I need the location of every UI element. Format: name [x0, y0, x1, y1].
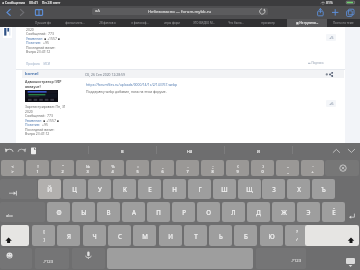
button[interactable]: .: [176, 160, 199, 176]
button[interactable]: +5: [326, 34, 336, 41]
button[interactable]: Ж: [272, 202, 295, 222]
button[interactable]: %: [101, 160, 124, 176]
button[interactable]: ): [251, 160, 274, 176]
button[interactable]: ·: [301, 160, 324, 176]
button[interactable]: В: [97, 202, 120, 222]
button[interactable]: Sidebar: [32, 6, 46, 19]
button[interactable]: Лучшие фо: [27, 19, 59, 27]
button[interactable]: 28 фактов о: [91, 19, 123, 27]
button[interactable]: Щ: [238, 179, 261, 199]
button[interactable]: Д: [247, 202, 270, 222]
button[interactable]: на: [156, 144, 224, 157]
staticText: игры форм: [164, 21, 180, 25]
staticText: >: [11, 169, 14, 174]
button[interactable]: Л: [222, 202, 245, 222]
button[interactable]: .?123: [256, 248, 306, 269]
button[interactable]: К: [113, 179, 136, 199]
button[interactable]: ▣ Не грузится...: [287, 19, 327, 27]
button[interactable]: Р: [172, 202, 195, 222]
button[interactable]: Emoji: [0, 248, 32, 269]
button[interactable]: Посты по теме: [327, 19, 360, 27]
button[interactable]: И: [159, 225, 182, 246]
button[interactable]: Delete: [325, 160, 359, 176]
button[interactable]: .?123: [35, 248, 69, 269]
button[interactable]: Я: [57, 225, 80, 246]
staticText: Профиль ИСИ: [26, 62, 51, 66]
button[interactable]: –: [276, 160, 299, 176]
button[interactable]: к философ...: [124, 19, 156, 27]
button[interactable]: О: [197, 202, 220, 222]
button[interactable]: Й: [38, 179, 61, 199]
button[interactable]: Voice input: [72, 248, 105, 269]
staticText: :: [137, 164, 139, 169]
button[interactable]: Next: [345, 145, 358, 157]
staticText: к философ...: [131, 21, 149, 25]
button[interactable]: Ъ: [312, 179, 335, 199]
button[interactable]: Ч: [83, 225, 106, 246]
button[interactable]: [: [32, 225, 55, 246]
button[interactable]: Tab: [0, 179, 37, 199]
button[interactable]: :: [126, 160, 149, 176]
button[interactable]: ЭТО ВИДЕО М...: [188, 19, 220, 27]
button[interactable]: А: [122, 202, 145, 222]
button[interactable]: Ь: [209, 225, 232, 246]
button[interactable]: Ш: [213, 179, 236, 199]
button[interactable]: Undo: [3, 145, 16, 157]
button[interactable]: Ы: [72, 202, 95, 222]
staticText: –: [287, 164, 289, 169]
button[interactable]: Previous: [330, 145, 343, 157]
button[interactable]: ;: [201, 160, 224, 176]
button[interactable]: в: [88, 144, 156, 157]
button[interactable]: ": [51, 160, 74, 176]
button[interactable]: Tabs: [344, 6, 357, 19]
button[interactable]: Т: [184, 225, 207, 246]
button[interactable]: фильм моть...: [59, 19, 91, 27]
button[interactable]: New tab: [329, 6, 342, 19]
button[interactable]: Ё: [322, 202, 345, 222]
staticText: Э: [306, 208, 311, 216]
button[interactable]: Redo: [15, 145, 28, 157]
button[interactable]: Shift: [1, 225, 29, 246]
button[interactable]: !: [26, 160, 49, 176]
button[interactable]: З: [262, 179, 285, 199]
button[interactable]: Reload: [256, 6, 269, 18]
button[interactable]: просмотр: [252, 19, 284, 27]
staticText: ЭТО ВИДЕО М...: [193, 21, 215, 25]
button[interactable]: Forward: [15, 6, 30, 19]
button[interactable]: Э: [297, 202, 320, 222]
button[interactable]: С: [108, 225, 131, 246]
button[interactable]: abc: [0, 202, 45, 222]
button[interactable]: Paste: [27, 145, 40, 157]
button[interactable]: Hide keyboard: [308, 248, 360, 269]
button[interactable]: Ц: [63, 179, 86, 199]
button[interactable]: Г: [188, 179, 211, 199]
button[interactable]: ?: [285, 225, 308, 246]
button[interactable]: Б: [234, 225, 257, 246]
button[interactable]: У: [88, 179, 111, 199]
button[interactable]: [92, 8, 268, 15]
button[interactable]: и: [224, 144, 292, 157]
button[interactable]: (: [226, 160, 249, 176]
button[interactable]: Ф: [47, 202, 70, 222]
button[interactable]: №: [76, 160, 99, 176]
button[interactable]: Н: [163, 179, 186, 199]
button[interactable]: Что было...: [220, 19, 252, 27]
button[interactable]: Share: [314, 6, 327, 19]
staticText: Последний визит:: [26, 45, 56, 50]
button[interactable]: <: [1, 160, 24, 176]
button[interactable]: Back: [1, 6, 16, 19]
button[interactable]: игры форм: [156, 19, 188, 27]
staticText: Уважение:: [25, 118, 43, 123]
button[interactable]: П: [147, 202, 170, 222]
button[interactable]: М: [133, 225, 156, 246]
button[interactable]: Enter: [343, 202, 360, 222]
button[interactable]: Ю: [260, 225, 283, 246]
button[interactable]: Shift: [305, 225, 359, 246]
staticText: Лучшие фо: [35, 21, 51, 25]
button[interactable]: ,: [151, 160, 174, 176]
button[interactable]: Е: [138, 179, 161, 199]
button[interactable]: +6: [326, 100, 336, 107]
button[interactable]: Х: [287, 179, 310, 199]
staticText: ;: [212, 164, 214, 169]
